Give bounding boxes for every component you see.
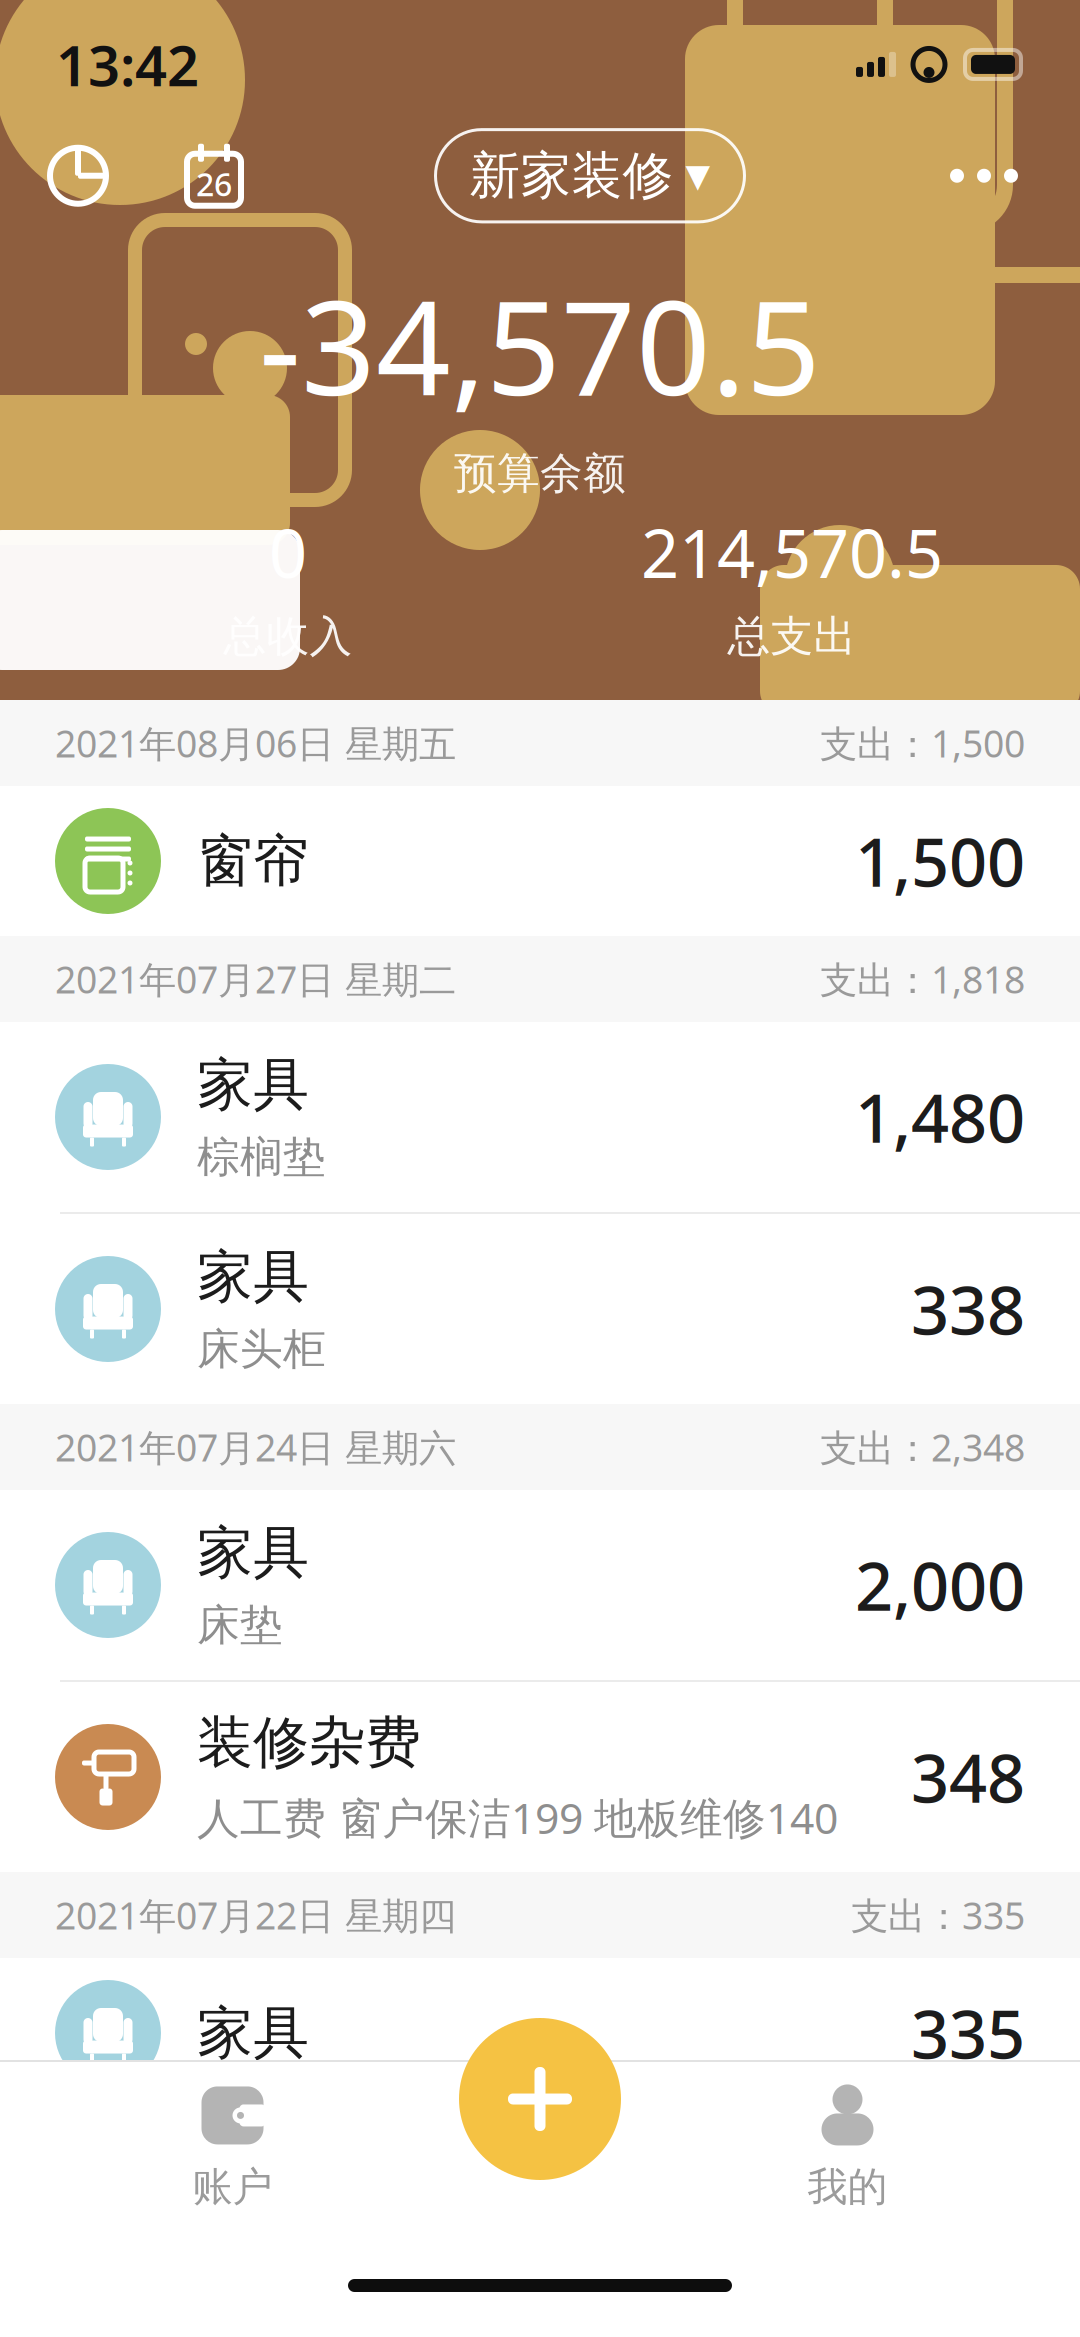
button[interactable]: 装修杂费 [0, 1682, 1080, 1872]
staticText: 支出：1,818 [820, 954, 1025, 1004]
staticText: 床头柜 [197, 1323, 326, 1376]
button[interactable]: 账户 [30, 2068, 435, 2227]
button[interactable]: 统计图表 [46, 144, 110, 208]
staticText: 335 [911, 1989, 1025, 2077]
staticText: 装修杂费 [197, 1708, 421, 1777]
staticText: 家具 [197, 1518, 309, 1587]
staticText: 家具 [197, 1050, 309, 1119]
button[interactable]: 日历 [182, 144, 246, 208]
staticText: 支出：2,348 [820, 1422, 1025, 1472]
staticText: 1,480 [855, 1073, 1025, 1161]
staticText: 2021年07月22日 星期四 [55, 1890, 456, 1940]
staticText: 预算余额 [454, 447, 626, 500]
staticText: 0 [269, 508, 307, 596]
staticText: 床垫 [197, 1599, 283, 1652]
button[interactable]: 新家装修 [435, 130, 744, 222]
staticText: 新家装修 [469, 145, 673, 207]
button[interactable]: 家具 [0, 1214, 1080, 1404]
staticText: 348 [911, 1733, 1025, 1821]
staticText: ▼ [685, 158, 710, 194]
staticText: 窗帘 [197, 827, 309, 895]
button[interactable]: 我的 [645, 2068, 1050, 2227]
button[interactable]: 家具 [0, 1022, 1080, 1214]
staticText: -34,570.5 [259, 258, 821, 431]
button[interactable]: 窗帘 [0, 786, 1080, 936]
staticText: 2021年08月06日 星期五 [55, 718, 456, 768]
staticText: 账户 [192, 2162, 272, 2211]
staticText: 支出：1,500 [820, 718, 1025, 768]
staticText: 支出：335 [851, 1890, 1025, 1940]
staticText: 总收入 [223, 610, 352, 663]
staticText: 我的 [807, 2162, 887, 2211]
staticText: 总支出 [727, 610, 856, 663]
staticText: 2,000 [855, 1541, 1025, 1629]
staticText: 338 [911, 1265, 1025, 1353]
staticText: 26 [196, 162, 232, 205]
staticText: 2021年07月24日 星期六 [55, 1422, 456, 1472]
staticText: 1,500 [855, 817, 1025, 905]
button[interactable]: 添加记账 [459, 2018, 621, 2180]
staticText: 人工费 窗户保洁199 地板维修140 [197, 1789, 838, 1846]
button[interactable]: 家具 [0, 1490, 1080, 1682]
staticText: 家具 [197, 1242, 309, 1311]
staticText: 13:42 [56, 27, 199, 102]
staticText: 棕榈垫 [197, 1131, 326, 1184]
button[interactable]: 家具 [0, 1958, 1080, 2108]
button[interactable]: 更多 [934, 144, 1034, 208]
staticText: 家具 [197, 1999, 309, 2067]
staticText: 2021年07月27日 星期二 [55, 954, 456, 1004]
staticText: 214,570.5 [641, 508, 943, 596]
